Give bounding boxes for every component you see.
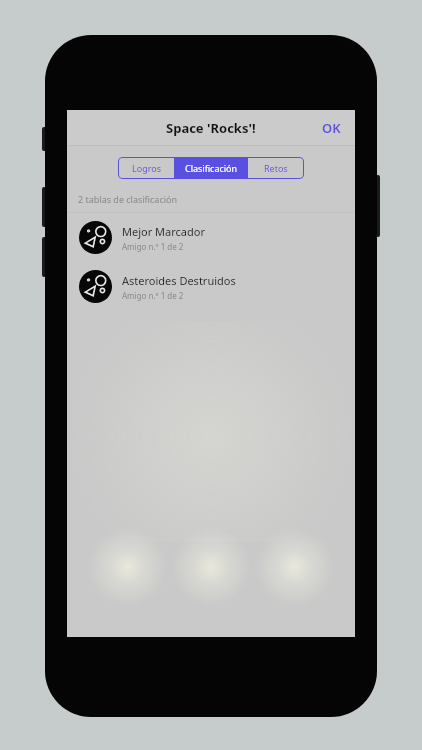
- staticText: Mejor Marcador: [122, 224, 205, 239]
- button[interactable]: Space Rocks leaderboard: [67, 213, 355, 262]
- other: Space Rocks leaderboard: [79, 221, 112, 254]
- button[interactable]: OK: [318, 114, 345, 142]
- staticText: Asteroides Destruidos: [122, 273, 236, 288]
- button[interactable]: Space Rocks leaderboard: [67, 262, 355, 311]
- button[interactable]: Retos: [248, 157, 304, 179]
- staticText: 2 tablas de clasificación: [78, 193, 178, 205]
- staticText: Clasificación: [185, 162, 238, 174]
- button[interactable]: Clasificación: [175, 157, 247, 179]
- staticText: Logros: [132, 162, 161, 174]
- staticText: Amigo n.º 1 de 2: [122, 290, 184, 301]
- button[interactable]: Logros: [118, 157, 174, 179]
- staticText: Amigo n.º 1 de 2: [122, 241, 184, 252]
- staticText: OK: [322, 119, 341, 137]
- staticText: Retos: [264, 162, 288, 174]
- other: Space Rocks leaderboard: [79, 270, 112, 303]
- staticText: Space 'Rocks'!: [166, 119, 256, 137]
